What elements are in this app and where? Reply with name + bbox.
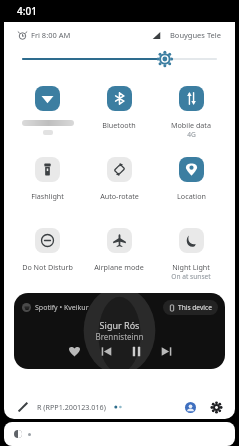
button[interactable]: This device <box>169 303 212 312</box>
staticText: Sigur Rós <box>14 319 225 331</box>
button[interactable]: Spotify • Kveikur <box>14 293 225 369</box>
staticText: This device <box>178 303 212 312</box>
button[interactable]: Night Light <box>155 218 227 289</box>
staticText: On at sunset <box>171 272 211 281</box>
staticText: Location <box>177 191 206 201</box>
button[interactable]: Pause <box>127 342 145 360</box>
staticText: 4:01 <box>17 4 37 18</box>
staticText: Spotify • Kveikur <box>35 303 89 313</box>
button[interactable]: Bluetooth <box>83 76 155 147</box>
button[interactable]: Auto-rotate <box>83 147 155 218</box>
button[interactable]: Mobile data <box>155 76 227 147</box>
button[interactable]: Bouygues Tele <box>170 30 221 40</box>
button[interactable]: Do Not Disturb <box>12 218 83 289</box>
button[interactable]: User account <box>182 399 198 415</box>
button[interactable]: Previous <box>97 342 115 360</box>
button[interactable]: Settings <box>208 399 224 415</box>
staticText: Do Not Disturb <box>22 262 73 272</box>
staticText: Mobile data <box>171 120 211 130</box>
button[interactable]: Wi-Fi <box>12 76 83 147</box>
other: Signal strength <box>152 31 161 40</box>
button[interactable]: Brightness <box>4 48 235 70</box>
staticText: Bluetooth <box>102 120 136 130</box>
button[interactable]: Favorite <box>65 342 83 360</box>
button[interactable]: Next <box>157 342 175 360</box>
staticText: R (RPP1.200123.016) <box>37 402 106 412</box>
button[interactable]: Fri 8:00 AM <box>18 30 71 40</box>
staticText: Fri 8:00 AM <box>31 30 71 40</box>
staticText: Night Light <box>172 262 210 272</box>
button[interactable]: Location <box>155 147 227 218</box>
staticText: Airplane mode <box>94 262 144 272</box>
staticText: Auto-rotate <box>100 191 139 201</box>
staticText: Brennisteinn <box>14 331 225 342</box>
staticText: Flashlight <box>31 191 64 201</box>
button[interactable]: Flashlight <box>12 147 83 218</box>
button[interactable]: Airplane mode <box>83 218 155 289</box>
button[interactable]: Edit tiles <box>15 399 30 414</box>
staticText: 4G <box>187 130 196 139</box>
